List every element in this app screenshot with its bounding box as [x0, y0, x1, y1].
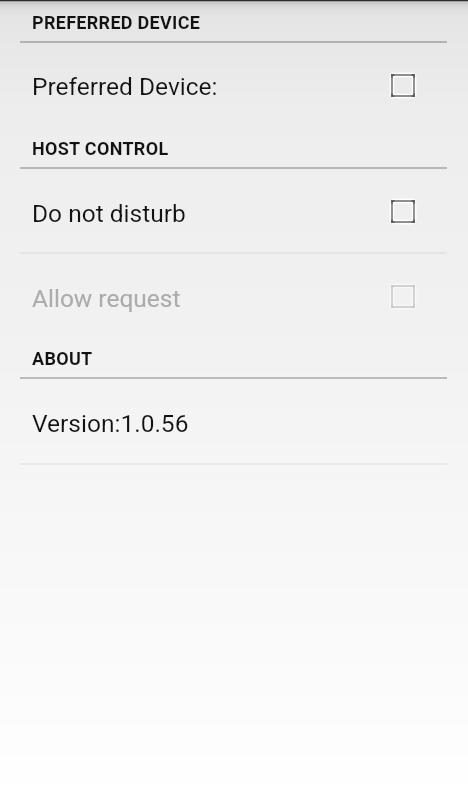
staticText: PREFERRED DEVICE — [32, 12, 201, 33]
button[interactable]: Toggle Do not disturb — [375, 183, 431, 239]
button[interactable]: Toggle Allow request — [375, 268, 431, 324]
button[interactable]: Preferred Device: — [0, 43, 468, 126]
button[interactable]: Allow request — [0, 254, 468, 337]
staticText: Version:1.0.56 — [32, 409, 189, 438]
button[interactable]: Toggle Preferred Device: — [375, 57, 431, 113]
staticText: Preferred Device: — [32, 72, 218, 101]
staticText: ABOUT — [32, 348, 93, 369]
staticText: HOST CONTROL — [32, 138, 169, 159]
button[interactable]: Do not disturb — [0, 169, 468, 252]
staticText: Allow request — [32, 284, 181, 313]
staticText: Do not disturb — [32, 199, 186, 228]
button[interactable]: Version:1.0.56 — [0, 379, 468, 463]
